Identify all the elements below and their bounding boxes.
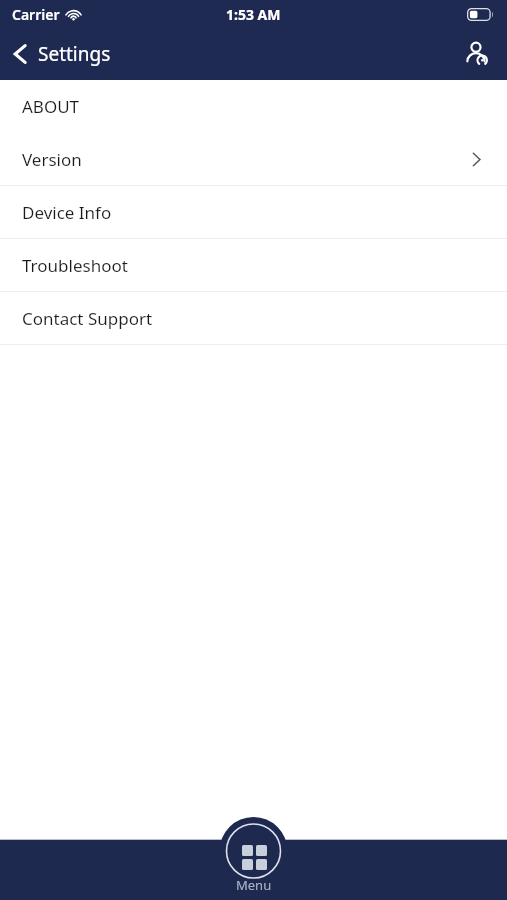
staticText: ABOUT [22, 95, 80, 118]
button[interactable]: Menu [220, 843, 288, 896]
staticText: Settings [38, 41, 111, 67]
staticText: Carrier [12, 5, 60, 24]
staticText: Contact Support [22, 307, 153, 330]
staticText: Version [22, 148, 82, 171]
staticText: 1:53 AM [226, 5, 281, 24]
button[interactable]: Settings [0, 35, 121, 73]
button[interactable]: Contact Support [0, 292, 507, 344]
button[interactable]: Version [0, 133, 507, 185]
button[interactable]: Device Info [0, 186, 507, 238]
staticText: Troubleshoot [22, 254, 128, 277]
staticText: Device Info [22, 201, 112, 224]
button[interactable]: Troubleshoot [0, 239, 507, 291]
button[interactable]: Switch account [459, 36, 495, 72]
staticText: Menu [236, 876, 272, 894]
